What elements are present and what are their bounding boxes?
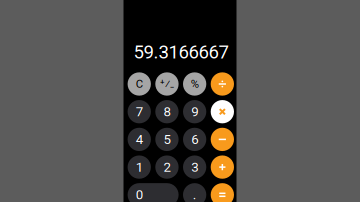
button[interactable]: 6 [183,128,206,151]
button[interactable]: Minus [211,128,234,151]
button[interactable]: Equals [211,183,234,202]
staticText: C [136,77,143,91]
staticText: 3 [191,159,198,175]
button[interactable]: ⁺⁄₋ [155,72,179,96]
staticText: 6 [191,132,198,147]
button[interactable]: Divide [211,72,234,96]
staticText: 9 [191,104,198,119]
staticText: 5 [163,132,170,147]
staticText: ⁺⁄₋ [160,77,174,91]
button[interactable]: 9 [183,100,206,123]
staticText: % [191,77,199,91]
staticText: 8 [163,104,170,119]
button[interactable]: Multiply [211,100,234,123]
button[interactable]: 2 [155,155,179,179]
button[interactable]: C [128,72,151,96]
button[interactable]: 7 [128,100,151,123]
button[interactable]: 1 [128,155,151,179]
staticText: 2 [163,159,170,175]
button[interactable]: Plus [211,155,234,179]
button[interactable]: 0 [128,183,179,202]
button[interactable]: 3 [183,155,206,179]
staticText: 4 [136,132,143,147]
staticText: 7 [136,104,143,119]
staticText: . [193,187,197,202]
button[interactable]: 5 [155,128,179,151]
staticText: 1 [136,159,143,175]
staticText: 59.3166667 [134,41,229,63]
staticText: 0 [136,187,143,202]
button[interactable]: . [183,183,206,202]
button[interactable]: 8 [155,100,179,123]
button[interactable]: 4 [128,128,151,151]
button[interactable]: % [183,72,206,96]
